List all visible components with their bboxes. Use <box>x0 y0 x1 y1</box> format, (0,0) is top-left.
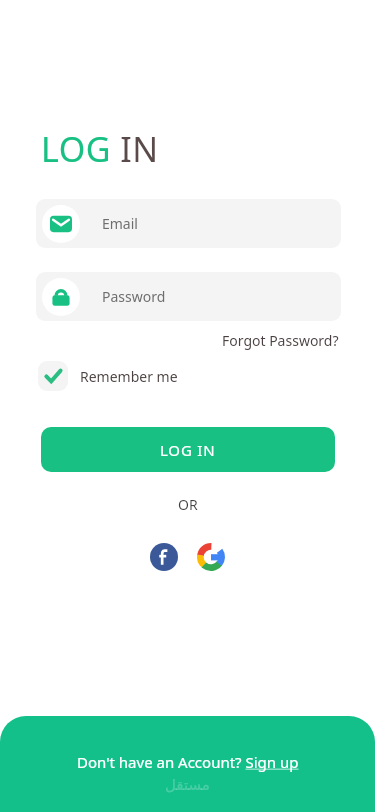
button[interactable]: LOG IN <box>41 427 335 472</box>
staticText: OR <box>178 495 198 514</box>
staticText: LOG IN <box>41 126 159 172</box>
staticText: Email <box>102 214 138 233</box>
button[interactable]: Sign in with Facebook <box>150 543 178 571</box>
button[interactable]: Don't have an Account? Sign up <box>77 752 299 772</box>
button[interactable]: Remember me <box>38 361 178 391</box>
button[interactable]: Password <box>36 272 341 321</box>
staticText: Password <box>102 287 166 306</box>
staticText: LOG IN <box>160 440 216 460</box>
staticText: Forgot Password? <box>222 331 339 350</box>
staticText: Remember me <box>80 367 178 386</box>
button[interactable]: Forgot Password? <box>222 331 339 350</box>
staticText: مستقل <box>165 776 210 793</box>
staticText: Don't have an Account? Sign up <box>77 752 299 772</box>
button[interactable]: Sign in with Google <box>197 543 225 571</box>
button[interactable]: Email <box>36 199 341 248</box>
